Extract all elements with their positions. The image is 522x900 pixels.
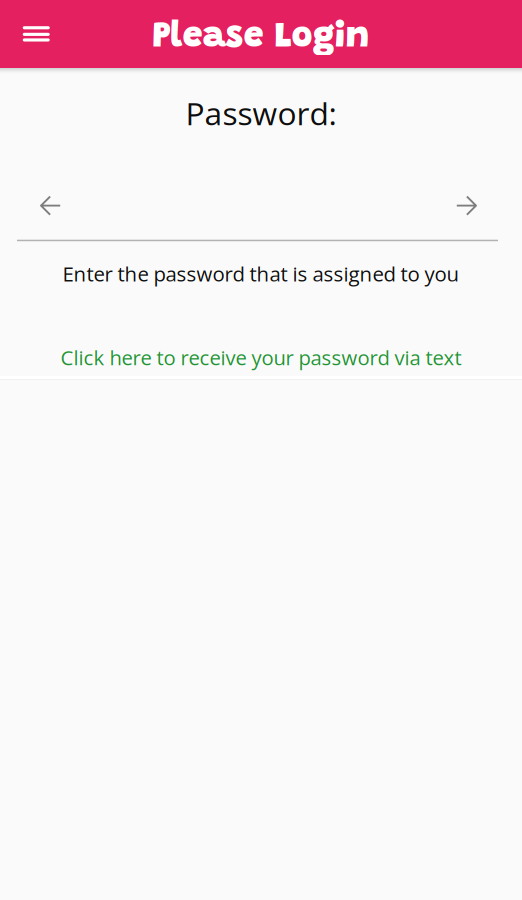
button[interactable]: Click here to receive your password via … [50,334,471,380]
button[interactable]: Next field [456,196,476,215]
staticText: Enter the password that is assigned to y… [62,260,459,287]
staticText: Please Login [152,20,369,56]
staticText: Click here to receive your password via … [60,343,461,371]
button[interactable]: Menu [0,0,68,68]
staticText: Password: [185,91,336,135]
button[interactable]: Previous field [41,196,61,215]
